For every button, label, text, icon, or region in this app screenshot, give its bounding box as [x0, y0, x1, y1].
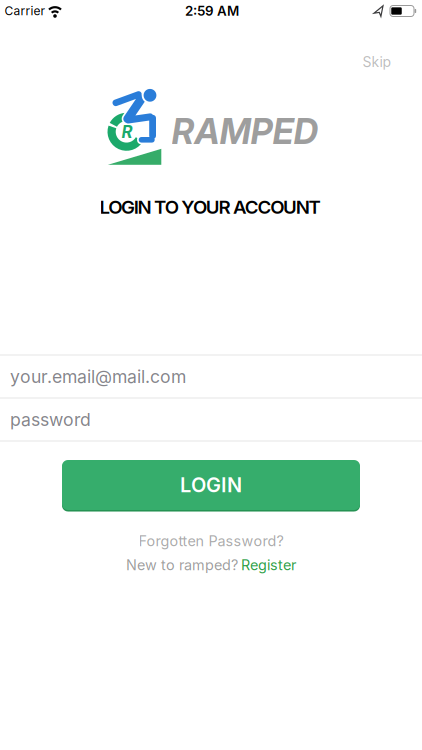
staticText: password	[10, 409, 91, 430]
button[interactable]: your.email@mail.com	[0, 355, 422, 397]
staticText: LOGIN TO YOUR ACCOUNT	[99, 196, 320, 218]
staticText: Skip	[362, 53, 391, 70]
button[interactable]: Register	[241, 556, 296, 574]
button[interactable]: Forgotten Password?	[138, 532, 283, 550]
staticText: Register	[241, 556, 296, 574]
staticText: your.email@mail.com	[10, 366, 186, 387]
button[interactable]: LOGIN	[62, 460, 360, 510]
button[interactable]: password	[0, 398, 422, 440]
staticText: Forgotten Password?	[138, 532, 283, 550]
staticText: R	[121, 122, 132, 142]
staticText: LOGIN	[180, 473, 242, 497]
staticText: New to ramped?	[126, 556, 238, 574]
staticText: Carrier	[4, 4, 45, 18]
staticText: 2:59 AM	[185, 3, 239, 19]
button[interactable]: Skip	[362, 53, 391, 70]
staticText: RAMPED	[171, 110, 318, 152]
